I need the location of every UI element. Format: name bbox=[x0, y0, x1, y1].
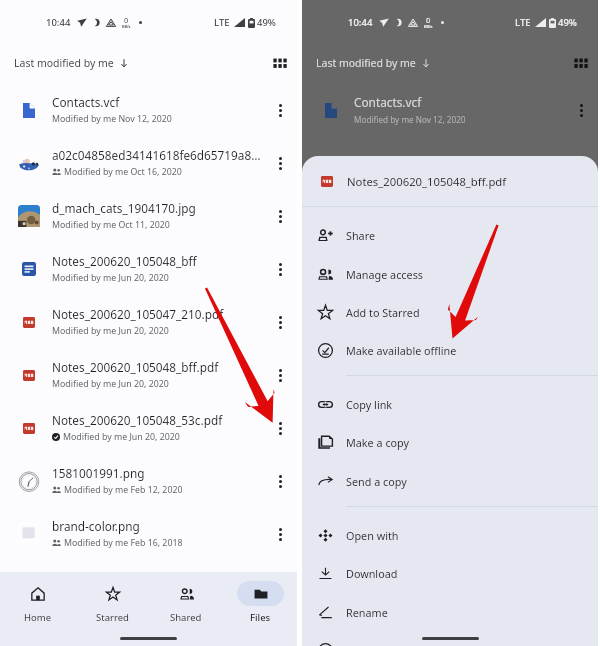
button[interactable]: Copy link bbox=[302, 385, 598, 423]
staticText: Last modified by me bbox=[14, 56, 114, 70]
staticText: Last modified by me bbox=[316, 56, 416, 70]
staticText: Shared bbox=[170, 611, 202, 624]
staticText: LTE bbox=[214, 16, 230, 29]
staticText: Manage access bbox=[346, 267, 423, 282]
staticText: Starred bbox=[96, 611, 129, 624]
staticText: Modified by me Jun 20, 2020 bbox=[52, 325, 169, 337]
staticText: LTE bbox=[515, 16, 531, 29]
staticText: Modified by me Oct 16, 2020 bbox=[64, 166, 182, 178]
button[interactable]: Make available offline bbox=[302, 331, 598, 369]
staticText: 0 bbox=[426, 15, 431, 25]
button[interactable]: More options bbox=[266, 361, 294, 389]
staticText: Files bbox=[250, 611, 271, 624]
button[interactable]: 1581001991.png bbox=[0, 454, 297, 507]
staticText: Notes_200620_105048_53c.pdf bbox=[52, 412, 223, 428]
button[interactable]: a02c04858ed34141618fe6d65719a8a... bbox=[0, 136, 297, 189]
staticText: Add to Starred bbox=[346, 305, 420, 320]
staticText: Modified by me Jun 20, 2020 bbox=[63, 431, 180, 443]
staticText: Notes_200620_105048_bff.pdf bbox=[52, 359, 219, 375]
staticText: Send a copy bbox=[346, 474, 407, 489]
staticText: 1581001991.png bbox=[52, 465, 145, 481]
button[interactable] bbox=[302, 631, 598, 646]
button[interactable]: Contacts.vcf bbox=[0, 83, 297, 136]
staticText: Home bbox=[24, 611, 52, 624]
button[interactable]: Files bbox=[223, 572, 297, 624]
button[interactable]: Home bbox=[0, 572, 75, 624]
button[interactable]: Last modified by me bbox=[0, 50, 139, 76]
button[interactable]: Notes_200620_105048_53c.pdf bbox=[0, 401, 297, 454]
staticText: Contacts.vcf bbox=[354, 94, 422, 110]
staticText: Make available offline bbox=[346, 343, 457, 358]
button[interactable]: brand-color.png bbox=[0, 507, 297, 560]
button[interactable]: Add to Starred bbox=[302, 293, 598, 331]
staticText: Modified by me Feb 16, 2018 bbox=[64, 537, 183, 549]
button[interactable]: More options bbox=[266, 202, 294, 230]
button[interactable]: Shared bbox=[149, 572, 223, 624]
staticText: 49% bbox=[257, 16, 276, 29]
staticText: Rename bbox=[346, 605, 388, 620]
staticText: Modified by me Oct 11, 2020 bbox=[52, 219, 170, 231]
button[interactable]: Make a copy bbox=[302, 423, 598, 461]
button[interactable]: Notes_200620_105048_bff.pdf bbox=[0, 348, 297, 401]
staticText: Notes_200620_105048_bff bbox=[52, 253, 197, 269]
staticText: Contacts.vcf bbox=[52, 94, 120, 110]
staticText: Notes_200620_105048_bff.pdf bbox=[347, 174, 507, 189]
button[interactable]: More options bbox=[266, 414, 294, 442]
staticText: brand-color.png bbox=[52, 518, 140, 534]
staticText: Modified by me Nov 12, 2020 bbox=[354, 114, 466, 125]
staticText: Modified by me Feb 12, 2020 bbox=[64, 484, 183, 496]
staticText: 0 bbox=[124, 15, 129, 25]
button[interactable]: Manage access bbox=[302, 255, 598, 293]
button[interactable]: Download bbox=[302, 554, 598, 592]
button[interactable]: Open with bbox=[302, 516, 598, 554]
button[interactable]: Notes_200620_105048_bff bbox=[0, 242, 297, 295]
button[interactable]: More options bbox=[266, 255, 294, 283]
button[interactable]: More options bbox=[266, 308, 294, 336]
button[interactable]: Send a copy bbox=[302, 462, 598, 500]
staticText: 10:44 bbox=[348, 16, 373, 29]
button[interactable]: Notes_200620_105047_210.pdf bbox=[0, 295, 297, 348]
button[interactable]: Grid view bbox=[266, 49, 294, 77]
button[interactable]: Notes_200620_105048_bff.pdf bbox=[302, 156, 598, 206]
staticText: Make a copy bbox=[346, 435, 410, 450]
staticText: Open with bbox=[346, 528, 399, 543]
staticText: 10:44 bbox=[46, 16, 71, 29]
staticText: a02c04858ed34141618fe6d65719a8a... bbox=[354, 155, 567, 171]
staticText: Share bbox=[346, 228, 375, 243]
button[interactable]: d_mach_cats_1904170.jpg bbox=[0, 189, 297, 242]
button[interactable]: More options bbox=[266, 520, 294, 548]
button[interactable]: More options bbox=[266, 96, 294, 124]
staticText: KB/s bbox=[424, 24, 433, 29]
staticText: d_mach_cats_1904170.jpg bbox=[52, 200, 196, 216]
staticText: Modified by me Nov 12, 2020 bbox=[52, 113, 172, 125]
staticText: KB/s bbox=[122, 24, 131, 29]
staticText: a02c04858ed34141618fe6d65719a8a... bbox=[52, 147, 264, 163]
button[interactable]: More options bbox=[266, 467, 294, 495]
staticText: Notes_200620_105047_210.pdf bbox=[52, 306, 224, 322]
staticText: Copy link bbox=[346, 397, 393, 412]
staticText: 49% bbox=[558, 16, 577, 29]
button[interactable]: Starred bbox=[75, 572, 149, 624]
staticText: Modified by me Jun 20, 2020 bbox=[52, 272, 169, 284]
staticText: Modified by me Jun 20, 2020 bbox=[52, 378, 169, 390]
button[interactable]: Rename bbox=[302, 593, 598, 631]
button[interactable]: Share bbox=[302, 216, 598, 254]
staticText: Download bbox=[346, 566, 398, 581]
button[interactable]: More options bbox=[266, 149, 294, 177]
